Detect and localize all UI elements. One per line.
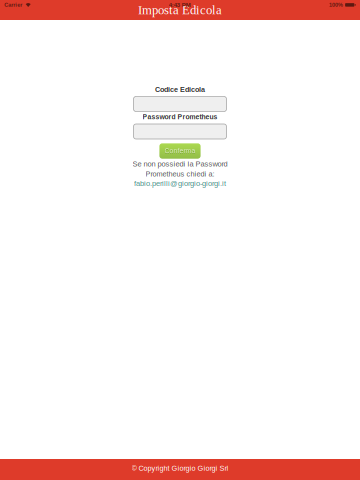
staticText: Prometheus chiedi a: xyxy=(145,170,214,178)
staticText: Conferma xyxy=(164,147,195,155)
staticText: Imposta Edicola xyxy=(138,3,222,17)
staticText: 100% xyxy=(329,2,343,8)
staticText: 4:43 PM xyxy=(169,1,191,8)
staticText: Carrier xyxy=(4,2,22,8)
staticText: Password Prometheus xyxy=(142,113,217,121)
staticText: © Copyright Giorgio Giorgi Srl xyxy=(131,464,228,472)
button[interactable]: Conferma xyxy=(159,143,200,158)
button[interactable]: Password Prometheus xyxy=(133,124,226,139)
staticText: Conferma xyxy=(164,148,195,155)
staticText: Codice Edicola xyxy=(155,85,205,93)
button[interactable]: fabio.perilli@giorgio-giorgi.it xyxy=(134,179,226,187)
staticText: fabio.perilli@giorgio-giorgi.it xyxy=(134,179,226,188)
button[interactable]: Codice Edicola xyxy=(133,96,226,111)
staticText: Se non possiedi la Password xyxy=(132,160,227,168)
